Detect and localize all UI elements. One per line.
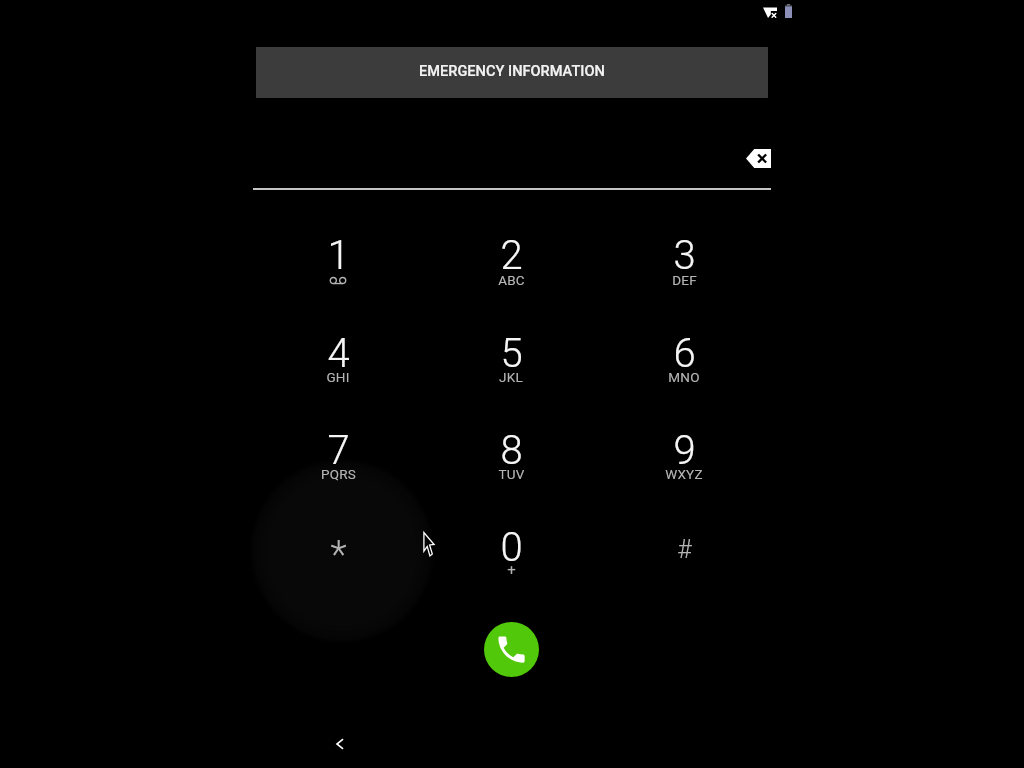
staticText: EMERGENCY INFORMATION (419, 62, 605, 79)
button[interactable]: 8 (436, 409, 586, 505)
staticText: GHI (326, 369, 350, 385)
staticText: 5 (500, 330, 523, 377)
staticText: ABC (498, 272, 525, 288)
staticText: 4 (327, 330, 350, 377)
staticText: DEF (672, 272, 697, 288)
button[interactable]: 6 (609, 312, 759, 408)
staticText: 3 (673, 232, 696, 279)
staticText: 7 (327, 427, 350, 474)
button[interactable]: 2 (436, 214, 586, 310)
button[interactable]: 9 (609, 409, 759, 505)
staticText: 8 (500, 427, 523, 474)
staticText: * (330, 533, 347, 578)
staticText: 9 (673, 427, 696, 474)
button[interactable]: EMERGENCY INFORMATION (256, 47, 768, 98)
staticText: + (507, 561, 516, 579)
button[interactable]: 7 (263, 409, 413, 505)
button[interactable]: 3 (609, 214, 759, 310)
staticText: 2 (500, 232, 523, 279)
staticText: 1 (327, 232, 350, 279)
button[interactable]: * (263, 506, 413, 602)
staticText: WXYZ (665, 466, 703, 482)
staticText: PQRS (321, 466, 356, 482)
staticText: TUV (498, 466, 525, 482)
staticText: MNO (668, 369, 700, 385)
button[interactable]: 5 (436, 312, 586, 408)
button[interactable]: Call (484, 622, 539, 677)
staticText: 6 (673, 330, 696, 377)
button[interactable]: Delete (734, 134, 782, 182)
button[interactable]: 1 (263, 214, 413, 310)
button[interactable]: # (609, 506, 759, 602)
button[interactable]: Back (316, 720, 364, 768)
staticText: JKL (499, 369, 523, 385)
button[interactable]: 0 (436, 506, 586, 602)
button[interactable]: 4 (263, 312, 413, 408)
staticText: # (677, 535, 692, 564)
staticText: 0 (500, 524, 523, 571)
